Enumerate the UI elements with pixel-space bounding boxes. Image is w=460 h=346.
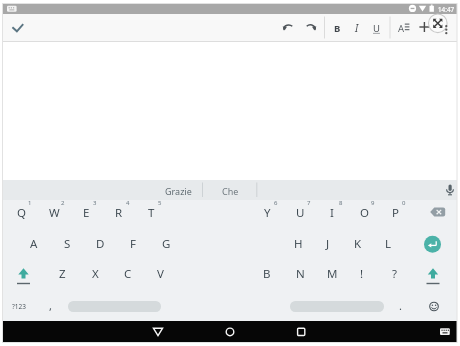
button[interactable]: G [151,232,181,256]
staticText: U [296,205,305,221]
button[interactable]: ? [379,262,409,286]
staticText: W [49,205,60,221]
button[interactable] [424,297,444,317]
button[interactable]: D [85,232,115,256]
button[interactable] [6,16,30,40]
staticText: A [398,22,405,35]
staticText: R [115,205,123,221]
staticText: B [334,22,341,35]
button[interactable] [279,16,299,40]
staticText: I [355,21,359,35]
button[interactable]: L [373,232,403,256]
button[interactable]: ! [347,262,377,286]
staticText: 14:47 [438,5,455,14]
button[interactable]: I [317,201,347,225]
staticText: D [96,236,105,252]
button[interactable] [215,321,245,342]
button[interactable]: U [285,201,315,225]
staticText: T [148,205,155,221]
staticText: 8 [339,199,343,207]
button[interactable]: F [118,232,148,256]
button[interactable] [420,231,446,257]
staticText: O [360,205,369,221]
button[interactable] [286,321,316,342]
staticText: 4 [126,199,130,207]
button[interactable]: Grazie [155,183,201,198]
button[interactable]: T [136,201,166,225]
staticText: Y [264,205,271,221]
button[interactable]: H [283,232,313,256]
staticText: 6 [274,199,278,207]
button[interactable]: V [145,262,175,286]
button[interactable] [415,16,433,40]
button[interactable]: W [39,201,69,225]
button[interactable]: P [380,201,410,225]
button[interactable]: B [327,16,347,40]
button[interactable]: Y [252,201,282,225]
button[interactable]: X [80,262,110,286]
button[interactable]: ?123 [6,296,32,316]
button[interactable]: O [349,201,379,225]
button[interactable] [427,13,448,34]
staticText: G [162,236,171,252]
button[interactable] [441,182,459,199]
staticText: N [296,266,305,282]
staticText: . [399,298,402,313]
staticText: , [49,298,52,313]
staticText: 5 [158,199,162,207]
button[interactable]: Q [6,201,36,225]
button[interactable] [10,260,38,288]
button[interactable] [143,321,173,342]
button[interactable]: S [52,232,82,256]
button[interactable]: N [285,262,315,286]
button[interactable] [68,301,161,312]
staticText: H [294,236,303,252]
staticText: P [392,205,399,221]
button[interactable]: Che [210,183,250,198]
button[interactable]: , [42,295,58,315]
button[interactable]: E [71,201,101,225]
button[interactable]: I [348,16,366,40]
button[interactable]: R [104,201,134,225]
staticText: E [83,205,90,221]
button[interactable]: B [252,262,282,286]
staticText: X [92,266,99,282]
button[interactable]: Z [47,262,77,286]
staticText: B [263,266,271,282]
button[interactable] [423,199,453,227]
staticText: M [327,266,338,282]
button[interactable] [290,301,384,312]
staticText: ?123 [12,302,26,311]
button[interactable]: J [313,232,343,256]
staticText: S [64,236,71,252]
staticText: K [354,236,362,252]
staticText: J [326,236,330,252]
staticText: V [157,266,164,282]
staticText: ! [360,266,364,282]
staticText: 1 [28,199,32,207]
staticText: ? [392,266,397,282]
button[interactable]: K [343,232,373,256]
staticText: 9 [371,199,375,207]
staticText: Q [17,205,26,221]
staticText: 3 [93,199,97,207]
staticText: Che [222,185,239,197]
staticText: 0 [402,199,406,207]
staticText: C [124,266,132,282]
staticText: 2 [61,199,65,207]
button[interactable]: A [19,232,49,256]
staticText: 7 [307,199,311,207]
staticText: Grazie [165,185,192,197]
button[interactable] [300,16,320,40]
button[interactable]: U [367,16,385,40]
staticText: F [130,236,136,252]
button[interactable]: M [317,262,347,286]
staticText: I [330,205,334,221]
button[interactable] [419,260,447,288]
staticText: Z [59,266,66,282]
button[interactable] [434,321,456,342]
button[interactable]: C [113,262,143,286]
staticText: A [30,236,38,252]
button[interactable]: A [394,16,408,40]
button[interactable]: . [393,295,407,315]
